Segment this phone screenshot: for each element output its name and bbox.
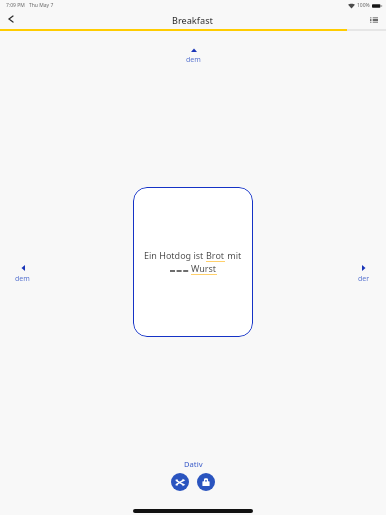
button[interactable]: Back: [3, 12, 19, 28]
staticText: 7:09 PM: [6, 2, 25, 9]
button[interactable]: List options: [366, 12, 382, 28]
staticText: Breakfast: [172, 14, 214, 26]
button[interactable]: Shuffle: [171, 473, 189, 491]
button[interactable]: Ein Hotdog ist: [133, 187, 253, 337]
staticText: Dativ: [184, 459, 203, 469]
button[interactable]: Lock: [197, 473, 215, 491]
staticText: Brot: [206, 249, 225, 261]
staticText: der: [358, 274, 370, 284]
staticText: Thu May 7: [29, 2, 54, 9]
staticText: dem: [186, 55, 201, 65]
staticText: Wurst: [191, 262, 217, 274]
staticText: Ein Hotdog ist: [144, 249, 206, 261]
staticText: 100%: [357, 2, 370, 9]
staticText: dem: [15, 274, 30, 284]
staticText: mit: [225, 249, 242, 261]
